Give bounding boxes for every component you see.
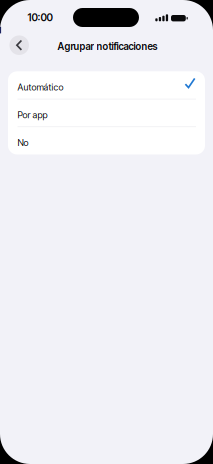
staticText: Agrupar	[57, 41, 93, 52]
button[interactable]: No	[8, 127, 205, 154]
staticText: notificaciones	[97, 41, 158, 52]
staticText: 10:00	[27, 11, 52, 24]
staticText: No	[17, 137, 28, 148]
button[interactable]: Por app	[8, 99, 205, 127]
button[interactable]: Automático	[8, 71, 205, 99]
button[interactable]: Atrás	[9, 35, 29, 55]
staticText: Por app	[17, 109, 47, 120]
staticText: Automático	[17, 82, 63, 93]
